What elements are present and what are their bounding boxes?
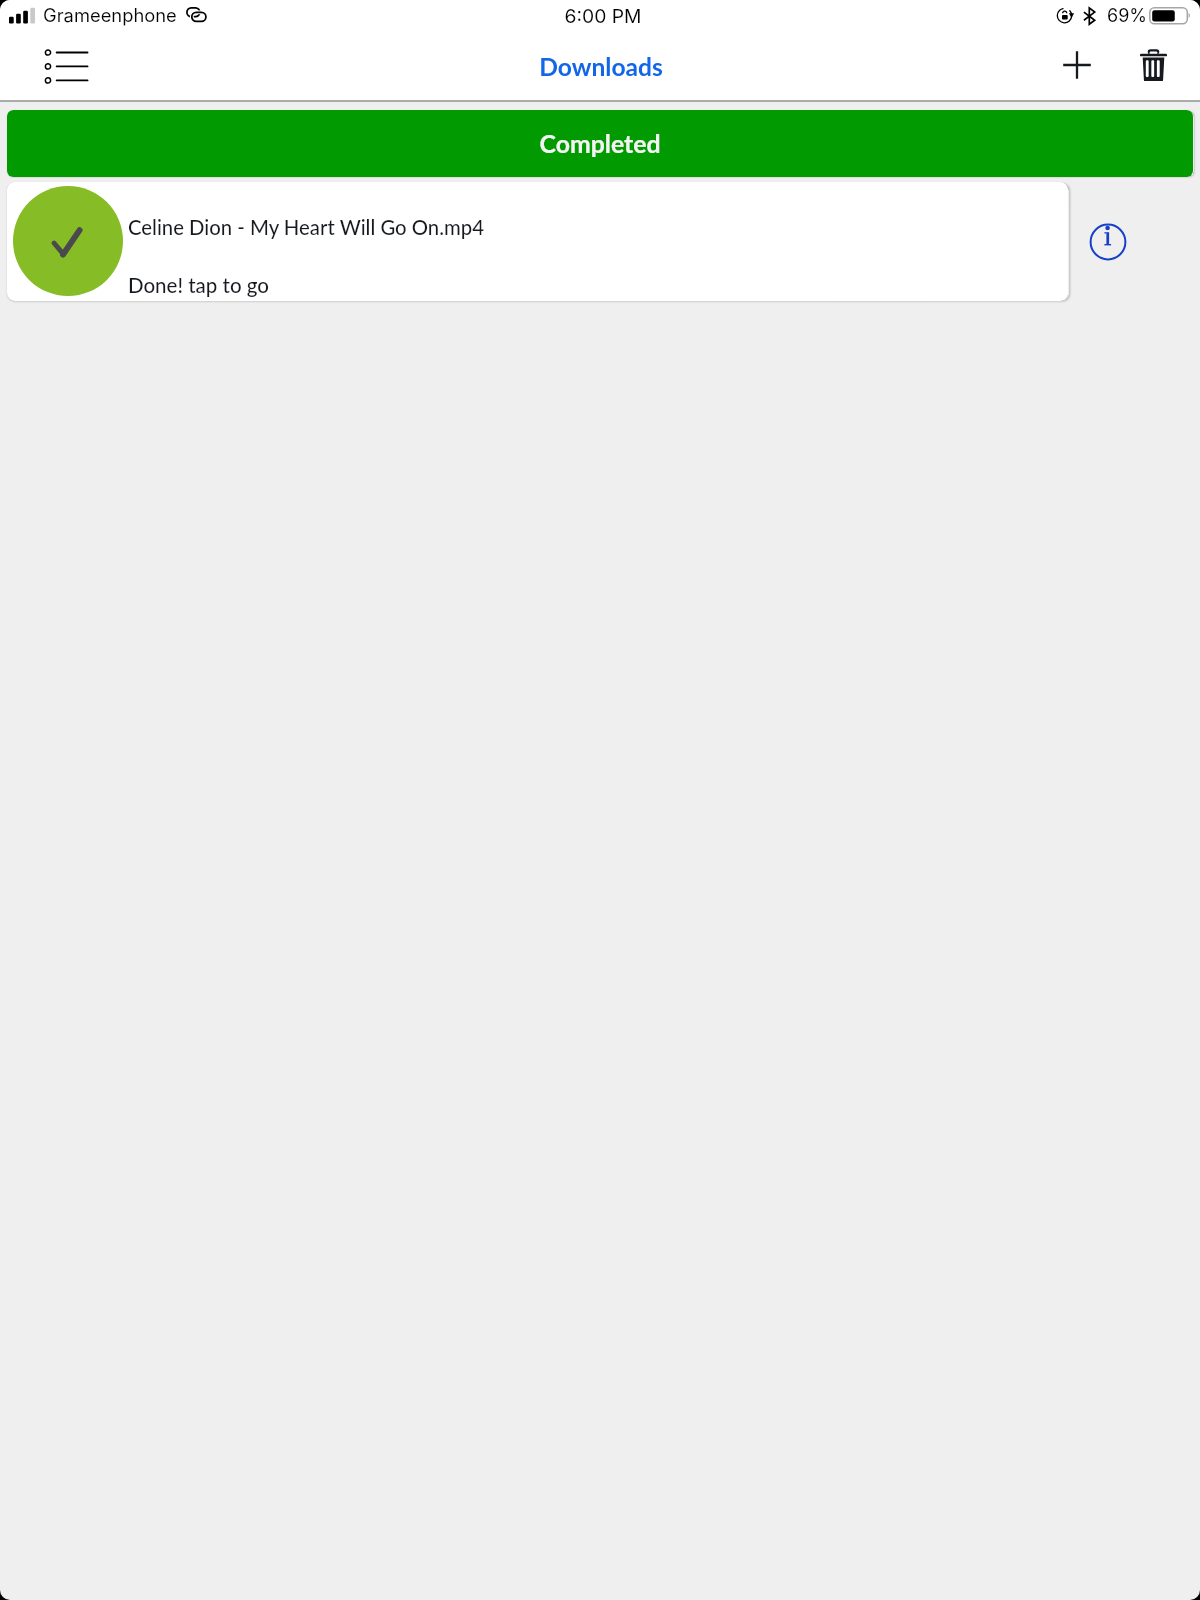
staticText: Downloads — [1, 52, 1200, 82]
staticText: Completed — [7, 129, 1193, 159]
staticText: Done! tap to go — [128, 273, 269, 298]
button[interactable]: Celine Dion - My Heart Will Go On.mp4 — [7, 182, 1068, 301]
button[interactable]: Downloads list options — [22, 36, 98, 94]
staticText: Grameenphone — [43, 4, 177, 26]
button[interactable]: Completed — [7, 110, 1193, 177]
button[interactable]: Add download — [1047, 35, 1107, 95]
staticText: 6:00 PM — [3, 4, 1200, 27]
staticText: Celine Dion - My Heart Will Go On.mp4 — [128, 215, 484, 239]
button[interactable]: Download info — [1072, 200, 1144, 284]
button[interactable]: Delete all downloads — [1124, 35, 1182, 95]
staticText: 69% — [1107, 5, 1147, 27]
